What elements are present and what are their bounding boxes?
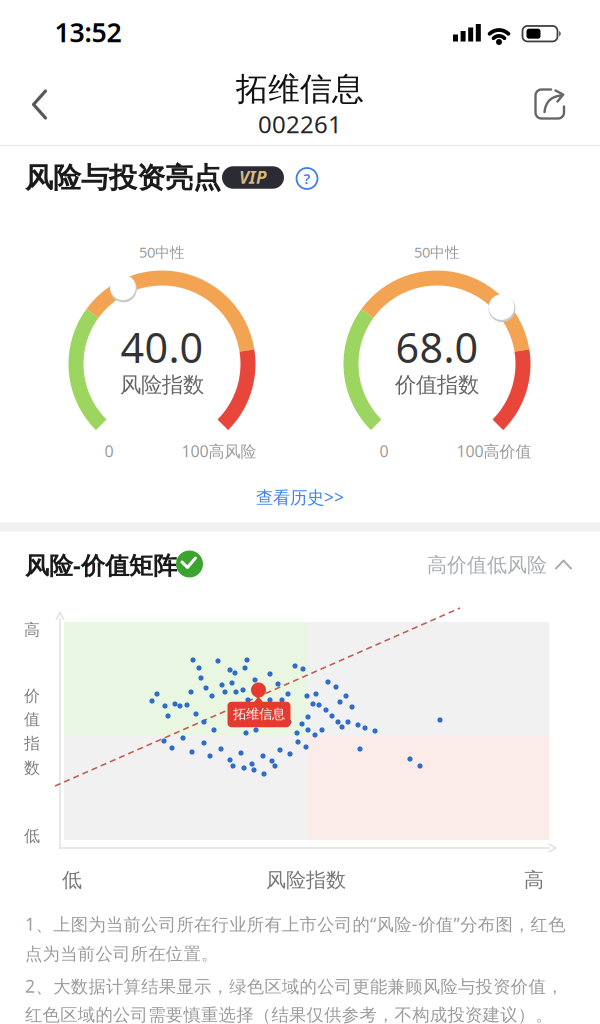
staticText: 值 (24, 710, 40, 729)
staticText: 0 (379, 440, 388, 462)
staticText: ? (303, 169, 310, 188)
staticText: 50中性 (414, 242, 460, 262)
staticText: 100高价值 (456, 440, 531, 462)
staticText: 50中性 (139, 242, 185, 262)
staticText: 高价值低风险 (427, 553, 547, 577)
staticText: 高 (24, 620, 40, 640)
button[interactable]: Help (292, 163, 322, 193)
staticText: 数 (24, 758, 40, 778)
staticText: 2、大数据计算结果显示，绿色区域的公司更能兼顾风险与投资价值， (25, 974, 563, 997)
staticText: 拓维信息 (233, 706, 285, 722)
staticText: 68.0 (395, 320, 478, 374)
staticText: 红色区域的公司需要慎重选择（结果仅供参考，不构成投资建议）。 (25, 1004, 552, 1024)
staticText: 低 (24, 826, 40, 846)
staticText: 指 (24, 734, 40, 753)
staticText: 1、上图为当前公司所在行业所有上市公司的“风险-价值”分布图，红色 (25, 912, 565, 935)
staticText: 价值指数 (395, 372, 479, 398)
staticText: 风险指数 (266, 868, 346, 892)
staticText: 风险-价值矩阵 (25, 549, 177, 581)
staticText: 低 (62, 868, 82, 892)
button[interactable]: Back (18, 82, 62, 126)
staticText: 风险与投资亮点 (25, 161, 221, 195)
button[interactable]: 高价值低风险 (427, 550, 571, 580)
staticText: 高 (524, 868, 544, 892)
staticText: 13:52 (54, 14, 121, 50)
staticText: 风险指数 (120, 372, 204, 398)
staticText: 100高风险 (181, 440, 256, 462)
staticText: VIP (239, 165, 267, 188)
staticText: 40.0 (120, 320, 203, 374)
staticText: 002261 (258, 108, 342, 140)
staticText: 查看历史>> (256, 485, 344, 508)
staticText: 点为当前公司所在位置。 (25, 943, 218, 965)
button[interactable]: Share (525, 80, 573, 128)
staticText: 0 (104, 440, 113, 462)
staticText: 价 (24, 686, 40, 706)
button[interactable]: 查看历史>> (230, 480, 370, 514)
staticText: 拓维信息 (236, 69, 364, 109)
